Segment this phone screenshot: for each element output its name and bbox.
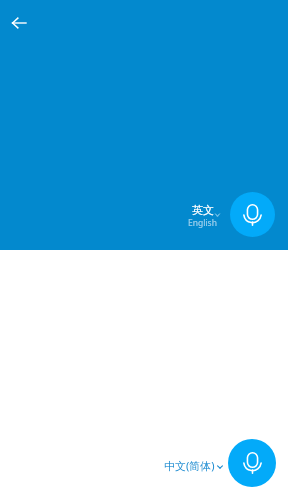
staticText: 英文 — [192, 203, 214, 217]
button[interactable]: Back — [6, 10, 32, 36]
button[interactable]: 英文 — [186, 201, 219, 231]
button[interactable]: 中文(简体) — [161, 454, 226, 477]
staticText: English — [188, 217, 217, 229]
button[interactable]: Speak Chinese — [228, 439, 276, 487]
staticText: 中文(简体) — [164, 458, 215, 473]
button[interactable]: Speak English — [230, 192, 275, 237]
